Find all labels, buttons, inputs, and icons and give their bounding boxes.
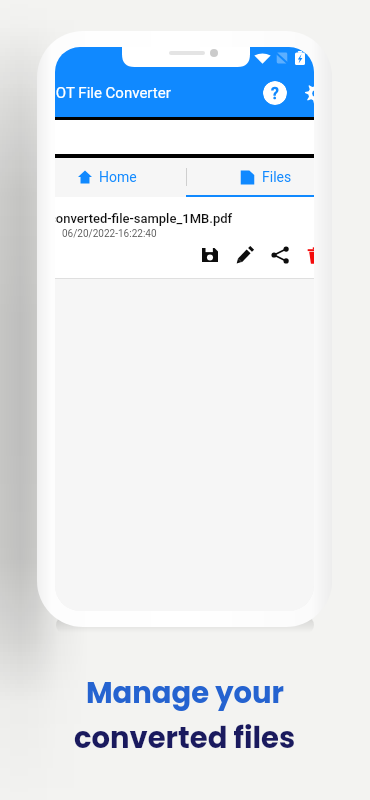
staticText: converted-file-sample_1MB.pdf	[55, 211, 233, 226]
staticText: ?	[271, 84, 279, 103]
button[interactable]: Rename	[234, 244, 256, 266]
button[interactable]: Share	[269, 244, 291, 266]
button[interactable]: Files	[192, 159, 314, 195]
staticText: Files	[262, 169, 292, 185]
staticText: Manage your	[86, 673, 285, 714]
button[interactable]: Save	[199, 244, 221, 266]
button[interactable]: Settings	[303, 81, 314, 105]
button[interactable]: Help	[263, 81, 287, 105]
staticText: converted files	[74, 718, 296, 759]
button[interactable]: Delete	[304, 244, 314, 266]
button[interactable]: Home	[55, 159, 181, 195]
staticText: DOT File Converter	[55, 84, 263, 102]
button[interactable]: converted-file-sample_1MB.pdf	[55, 197, 314, 279]
staticText: Home	[99, 169, 137, 185]
staticText: 06/20/2022-16:22:40	[62, 228, 157, 240]
